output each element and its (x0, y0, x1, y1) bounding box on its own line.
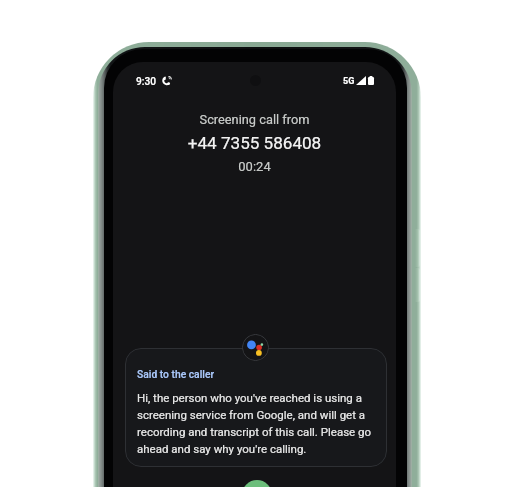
staticText: 00:24 (113, 159, 396, 174)
staticText: 9:30 (136, 76, 157, 88)
staticText: Said to the caller (137, 368, 215, 380)
other: On a call (162, 76, 172, 86)
other: Power button (415, 229, 420, 267)
staticText: Screening call from (113, 112, 396, 127)
staticText: Hi, the person who you've reached is usi… (137, 391, 375, 456)
staticText: 5G (343, 76, 355, 87)
other: Volume buttons (415, 268, 420, 302)
button[interactable]: Answer call (242, 480, 272, 487)
other: Google Assistant (242, 334, 269, 361)
button[interactable]: Said to the caller (125, 348, 387, 467)
staticText: +44 7355 586408 (113, 133, 396, 153)
